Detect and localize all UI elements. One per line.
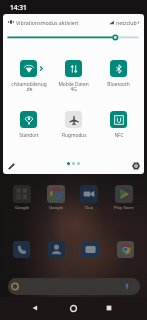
button[interactable]: Duo [80, 185, 98, 211]
button[interactable]: Google [47, 185, 65, 211]
button[interactable]: Übersicht [100, 299, 118, 317]
button[interactable]: Zurück [26, 299, 44, 317]
button[interactable]: Bearbeiten [4, 159, 18, 173]
staticText: NFC [114, 132, 124, 139]
staticText: Flugmodus [61, 132, 87, 139]
button[interactable]: NFC [96, 111, 141, 139]
staticText: netzclub+ [116, 19, 140, 26]
button[interactable]: Contacts [48, 241, 65, 258]
button[interactable]: Messages [82, 241, 99, 258]
button[interactable]: Flugmodus [51, 111, 96, 139]
staticText: Duo [85, 205, 94, 211]
button[interactable]: Einstellungen [129, 159, 143, 173]
button[interactable]: Standort [6, 111, 51, 139]
button[interactable]: Phone [13, 241, 30, 258]
button[interactable]: Suche [8, 278, 140, 295]
button[interactable]: Mobile Daten 4G [51, 60, 96, 93]
staticText: Google [49, 205, 64, 211]
staticText: Play Store [114, 205, 134, 211]
button[interactable]: Chrome [117, 241, 134, 258]
staticText: chitamobilenug .de [11, 81, 47, 93]
staticText: Vibrationsmodus aktiviert [16, 19, 79, 26]
staticText: Bluetooth [107, 81, 130, 88]
button[interactable]: chitamobilenug .de [6, 60, 51, 93]
staticText: Standort [19, 132, 39, 139]
button[interactable]: Startbildschirm [64, 299, 82, 317]
staticText: Google [15, 205, 30, 211]
staticText: Mobile Daten 4G [58, 81, 89, 93]
button[interactable]: Google [13, 185, 31, 211]
staticText: 14:31 [10, 3, 27, 12]
button[interactable]: Bluetooth [96, 60, 141, 88]
button[interactable]: Play Store [114, 185, 134, 211]
